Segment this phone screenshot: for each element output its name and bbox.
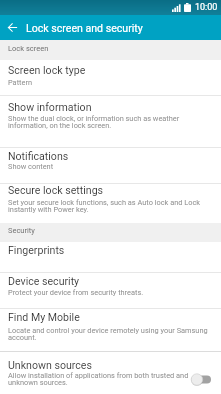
button[interactable]: Unknown sources	[0, 352, 221, 394]
staticText: Locate and control your device remotely …	[8, 326, 213, 342]
staticText: Unknown sources	[8, 359, 92, 371]
staticText: Find My Mobile	[8, 311, 80, 323]
staticText: Lock screen and security	[26, 22, 143, 34]
staticText: Show content	[8, 162, 213, 171]
staticText: Security	[8, 226, 35, 235]
staticText: Lock screen	[8, 44, 49, 53]
button[interactable]: Notifications	[0, 148, 221, 184]
staticText: Device security	[8, 275, 80, 287]
button[interactable]: Secure lock settings	[0, 184, 221, 223]
staticText: 10:00	[195, 2, 218, 13]
button[interactable]: Show information	[0, 96, 221, 148]
staticText: Allow installation of applications from …	[8, 371, 194, 387]
button[interactable]: Screen lock type	[0, 60, 221, 96]
staticText: Screen lock type	[8, 64, 86, 76]
staticText: Pattern	[8, 78, 213, 87]
staticText: Set your secure lock functions, such as …	[8, 198, 213, 214]
staticText: Protect your device from security threat…	[8, 288, 213, 297]
button[interactable]: Find My Mobile	[0, 309, 221, 352]
button[interactable]: Device security	[0, 273, 221, 309]
staticText: Secure lock settings	[8, 184, 104, 196]
button[interactable]	[4, 19, 21, 36]
staticText: Show information	[8, 101, 92, 113]
staticText: Fingerprints	[8, 244, 65, 256]
staticText: Show the dual clock, or information such…	[8, 114, 213, 130]
button[interactable]: Fingerprints	[0, 242, 221, 273]
staticText: Notifications	[8, 150, 69, 162]
